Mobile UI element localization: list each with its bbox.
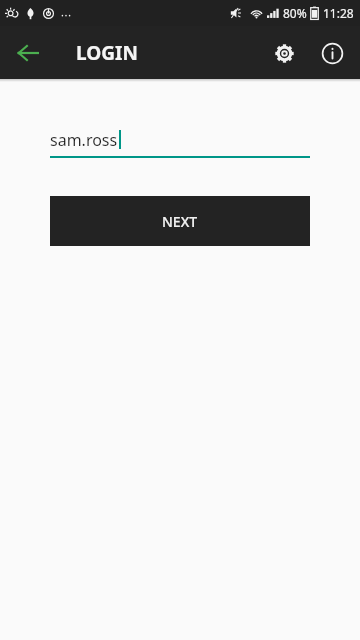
staticText: LOGIN [76,40,138,66]
button[interactable]: NEXT [50,196,310,246]
button[interactable]: Back [4,29,52,77]
staticText: sam.ross [50,129,118,151]
button[interactable]: Settings [260,29,308,77]
staticText: 11:28 [323,5,354,21]
staticText: 80% [283,5,307,21]
button[interactable]: sam.ross [50,122,310,158]
button[interactable]: Info [308,29,356,77]
staticText: NEXT [162,212,198,231]
